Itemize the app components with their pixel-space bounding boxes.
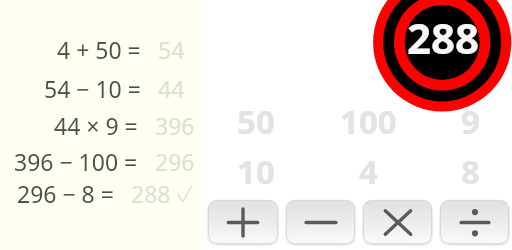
button[interactable]: 4 (359, 146, 378, 196)
staticText: 100 (340, 99, 397, 144)
staticText: 288 (407, 9, 480, 66)
staticText: 44 × 9 = (54, 110, 138, 141)
staticText: 396 (155, 110, 195, 141)
button[interactable]: 10 (237, 146, 275, 196)
staticText: 296 − 8 = (17, 178, 114, 209)
staticText: 44 (158, 73, 185, 104)
button[interactable]: 50 (237, 96, 275, 146)
button[interactable]: Plus (208, 200, 278, 244)
button[interactable]: 100 (340, 96, 397, 146)
staticText: 288 (131, 178, 171, 209)
staticText: 9 (461, 99, 480, 144)
button[interactable]: Divide (440, 200, 509, 244)
button[interactable]: Minus (286, 200, 355, 244)
staticText: 54 (158, 34, 185, 65)
button[interactable]: Multiply (363, 200, 432, 244)
staticText: 296 (155, 146, 195, 177)
button[interactable]: 288 (374, 0, 512, 107)
staticText: 396 − 100 = (14, 146, 138, 177)
staticText: 8 (461, 149, 480, 194)
staticText: 10 (237, 149, 275, 194)
button[interactable]: 9 (461, 96, 480, 146)
staticText: 4 (359, 149, 378, 194)
button[interactable]: 8 (461, 146, 480, 196)
staticText: 50 (237, 99, 275, 144)
staticText: 54 − 10 = (44, 73, 141, 104)
staticText: 4 + 50 = (57, 34, 141, 65)
